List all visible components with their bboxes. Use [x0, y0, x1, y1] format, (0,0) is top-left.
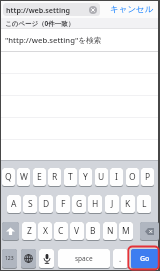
button[interactable]: V — [70, 222, 84, 240]
staticText: L — [142, 198, 147, 210]
staticText: R — [52, 171, 58, 183]
staticText: G — [76, 198, 83, 210]
staticText: Z — [27, 225, 32, 237]
staticText: M — [122, 225, 130, 237]
button[interactable]: U — [95, 168, 108, 186]
button[interactable]: W — [17, 168, 30, 186]
button[interactable]: "http://web.setting"を検索 — [1, 29, 158, 51]
button[interactable]: R — [48, 168, 61, 186]
button[interactable]: N — [103, 222, 117, 240]
staticText: space — [75, 254, 93, 263]
button[interactable] — [21, 249, 36, 268]
button[interactable]: X — [38, 222, 52, 240]
staticText: 123 — [5, 255, 14, 262]
button[interactable]: E — [33, 168, 46, 186]
staticText: I — [115, 171, 118, 183]
staticText: E — [37, 171, 42, 183]
button[interactable]: Y — [79, 168, 92, 186]
button[interactable]: Go — [131, 249, 159, 268]
staticText: S — [28, 198, 33, 210]
staticText: このページ（0件一致） — [5, 19, 75, 28]
button[interactable]: 123 — [2, 249, 17, 268]
staticText: O — [129, 171, 136, 183]
button[interactable] — [39, 249, 54, 268]
staticText: T — [68, 171, 73, 183]
button[interactable]: http://web.setting — [3, 3, 100, 16]
staticText: D — [43, 198, 50, 210]
button[interactable]: J — [105, 195, 119, 213]
staticText: Go — [140, 254, 150, 264]
staticText: A — [11, 198, 17, 210]
staticText: キャンセル — [110, 4, 154, 15]
button[interactable]: space — [58, 249, 110, 268]
staticText: H — [92, 198, 99, 210]
button[interactable]: S — [23, 195, 37, 213]
staticText: Q — [5, 171, 12, 183]
staticText: Y — [83, 171, 88, 183]
staticText: N — [107, 225, 114, 237]
button[interactable]: L — [137, 195, 151, 213]
button[interactable]: Q — [2, 168, 15, 186]
staticText: . — [119, 253, 122, 264]
staticText: W — [20, 171, 28, 183]
button[interactable]: P — [141, 168, 154, 186]
staticText: P — [145, 171, 151, 183]
button[interactable]: A — [7, 195, 21, 213]
staticText: B — [90, 225, 96, 237]
staticText: U — [98, 171, 105, 183]
staticText: J — [111, 198, 114, 210]
staticText: V — [74, 225, 80, 237]
button[interactable]: M — [119, 222, 133, 240]
staticText: "http://web.setting"を検索 — [5, 35, 102, 46]
button[interactable]: Z — [22, 222, 36, 240]
staticText: C — [58, 225, 64, 237]
staticText: http://web.setting — [6, 5, 70, 15]
staticText: K — [125, 198, 131, 210]
button[interactable]: K — [121, 195, 135, 213]
staticText: X — [43, 225, 48, 237]
button[interactable]: G — [72, 195, 86, 213]
button[interactable]: . — [113, 249, 128, 268]
button[interactable]: T — [64, 168, 77, 186]
button[interactable]: O — [126, 168, 139, 186]
button[interactable] — [2, 222, 19, 240]
staticText: F — [61, 198, 66, 210]
button[interactable]: H — [88, 195, 102, 213]
button[interactable]: F — [56, 195, 70, 213]
button[interactable]: C — [54, 222, 68, 240]
button[interactable]: D — [39, 195, 53, 213]
button[interactable]: B — [86, 222, 100, 240]
button[interactable]: キャンセル — [106, 1, 158, 18]
button[interactable] — [140, 222, 159, 240]
button[interactable]: I — [110, 168, 123, 186]
